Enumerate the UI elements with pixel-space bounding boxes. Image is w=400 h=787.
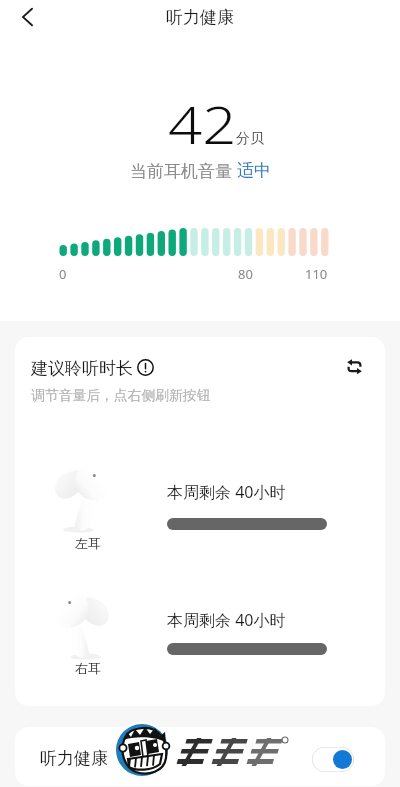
- staticText: 右耳: [75, 660, 101, 676]
- staticText: 左耳: [75, 535, 101, 551]
- staticText: 建议聆听时长: [31, 358, 133, 379]
- staticText: 42: [168, 88, 237, 159]
- button[interactable]: Info: [133, 355, 157, 379]
- staticText: 本周剩余 40小时: [167, 481, 286, 503]
- staticText: 110: [305, 265, 328, 283]
- staticText: 适中: [237, 160, 271, 181]
- staticText: 听力健康: [166, 7, 234, 28]
- staticText: 分贝: [236, 130, 264, 148]
- staticText: 80: [238, 265, 253, 283]
- staticText: 听力健康: [40, 748, 108, 769]
- button[interactable]: Refresh: [341, 354, 367, 380]
- staticText: 调节音量后，点右侧刷新按钮: [31, 387, 211, 404]
- button[interactable]: Back: [10, 0, 44, 34]
- staticText: 当前耳机音量: [130, 159, 237, 182]
- staticText: 0: [59, 265, 67, 283]
- staticText: 本周剩余 40小时: [167, 609, 286, 631]
- button[interactable]: Toggle hearing health: [312, 747, 354, 772]
- button[interactable]: 听力健康: [15, 727, 385, 786]
